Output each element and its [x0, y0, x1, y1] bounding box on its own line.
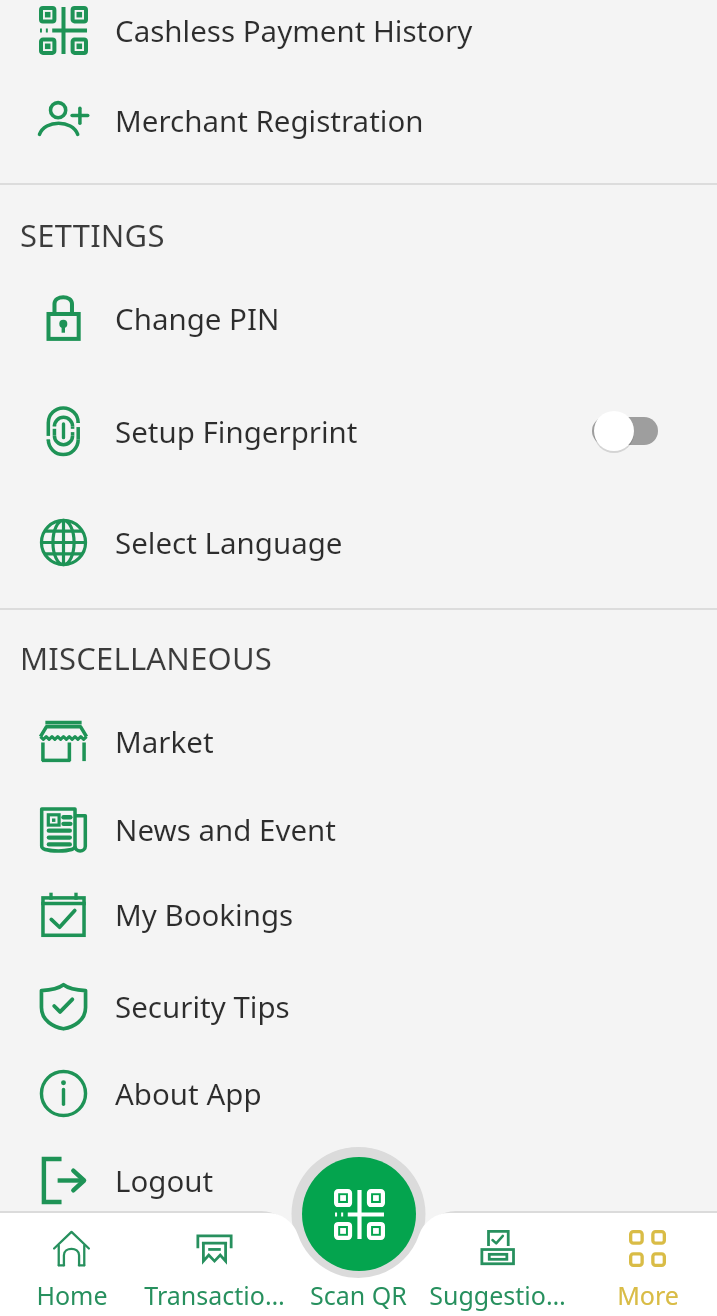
button[interactable]: Merchant Registration [0, 76, 717, 164]
button[interactable]: Suggestio… [426, 1213, 569, 1316]
button[interactable]: News and Event [0, 785, 717, 873]
staticText: MISCELLANEOUS [20, 637, 273, 679]
staticText: Transactio… [144, 1278, 285, 1312]
staticText: About App [115, 1073, 262, 1113]
button[interactable]: Home [0, 1213, 143, 1316]
button[interactable]: Market [0, 697, 717, 785]
button[interactable]: About App [0, 1049, 717, 1137]
staticText: Cashless Payment History [115, 10, 473, 50]
button[interactable]: My Bookings [0, 870, 717, 958]
staticText: SETTINGS [20, 214, 165, 256]
staticText: Home [36, 1278, 108, 1312]
button[interactable]: Scan QR [302, 1157, 416, 1271]
button[interactable]: Logout [0, 1136, 717, 1224]
staticText: Setup Fingerprint [115, 411, 358, 451]
staticText: Suggestio… [429, 1278, 566, 1312]
button[interactable]: Toggle fingerprint [592, 409, 658, 453]
button[interactable]: Scan QR [287, 1213, 430, 1316]
button[interactable]: Transactio… [143, 1213, 286, 1316]
staticText: More [617, 1278, 679, 1312]
staticText: Change PIN [115, 298, 280, 338]
staticText: News and Event [115, 809, 336, 849]
button[interactable]: Setup Fingerprint [0, 375, 717, 487]
staticText: Scan QR [310, 1278, 407, 1312]
button[interactable]: More [576, 1213, 717, 1316]
staticText: Market [115, 721, 214, 761]
button[interactable]: Cashless Payment History [0, 0, 717, 74]
button[interactable]: Change PIN [0, 262, 717, 374]
staticText: My Bookings [115, 894, 294, 934]
button[interactable]: Security Tips [0, 962, 717, 1050]
button[interactable]: Select Language [0, 486, 717, 598]
staticText: Select Language [115, 522, 343, 562]
staticText: Merchant Registration [115, 100, 424, 140]
staticText: Logout [115, 1160, 214, 1200]
staticText: Security Tips [115, 986, 290, 1026]
